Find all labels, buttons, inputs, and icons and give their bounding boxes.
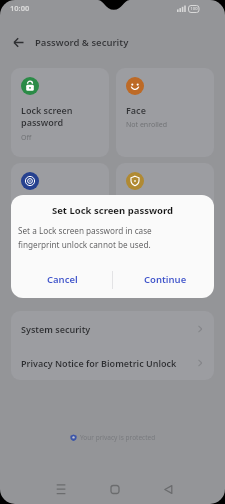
staticText: Lock screen password xyxy=(21,104,73,129)
staticText: System security xyxy=(21,323,196,335)
button[interactable]: Continue xyxy=(115,261,214,298)
staticText: Cancel xyxy=(47,273,78,286)
staticText: Privacy Notice for Biometric Unlock xyxy=(21,357,196,369)
button[interactable]: System security xyxy=(11,311,214,346)
staticText: 100 xyxy=(189,6,199,11)
button[interactable]: Privacy Notice for Biometric Unlock xyxy=(11,346,214,380)
staticText: Off xyxy=(21,133,32,143)
button[interactable]: Lock screen password xyxy=(11,68,109,157)
button[interactable] xyxy=(116,163,214,252)
staticText: Your privacy is protected xyxy=(80,433,156,442)
button[interactable] xyxy=(11,163,109,252)
staticText: Set Lock screen password xyxy=(11,204,214,217)
staticText: Not enrolled xyxy=(126,120,168,130)
button[interactable]: Face xyxy=(116,68,214,157)
staticText: Face xyxy=(126,104,146,116)
staticText: Set a Lock screen password in case finge… xyxy=(18,225,152,250)
button[interactable] xyxy=(8,33,28,53)
staticText: Password & security xyxy=(35,36,129,49)
button[interactable]: Cancel xyxy=(12,261,113,298)
staticText: 10:00 xyxy=(10,3,30,13)
staticText: Continue xyxy=(144,273,187,286)
